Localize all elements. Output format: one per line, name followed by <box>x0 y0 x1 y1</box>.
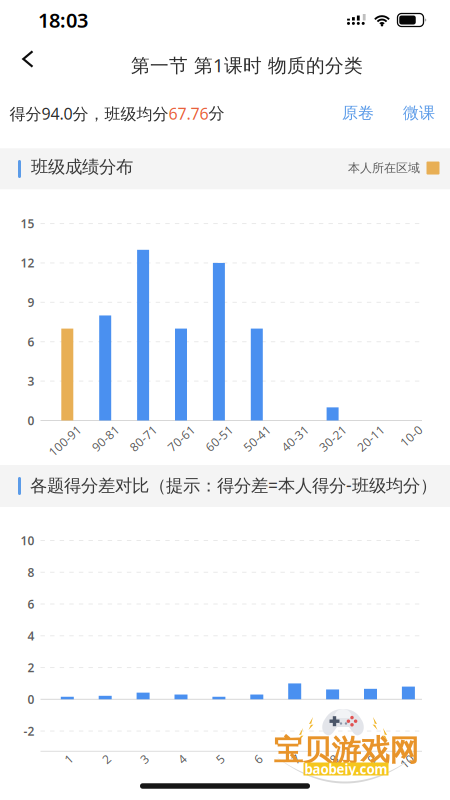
staticText: 5 <box>218 754 225 770</box>
staticText: 4 <box>27 628 34 644</box>
staticText: 0 <box>27 412 34 428</box>
staticText: 各题得分差对比（提示：得分差=本人得分-班级均分） <box>30 473 437 496</box>
staticText: 30-21 <box>319 435 351 451</box>
staticText: 4 <box>180 754 187 770</box>
staticText: 2 <box>104 754 111 770</box>
staticText: 12 <box>20 255 34 271</box>
staticText: baobeiy.com <box>304 760 387 778</box>
staticText: 50-41 <box>243 435 275 451</box>
staticText: 8 <box>332 754 339 770</box>
staticText: 原卷 <box>342 103 374 123</box>
staticText: 3 <box>142 754 149 770</box>
button[interactable]: 原卷 <box>334 96 382 130</box>
staticText: 7 <box>294 754 301 770</box>
staticText: 第一节 第1课时 物质的分类 <box>131 53 363 77</box>
staticText: 10 <box>20 532 34 548</box>
button[interactable]: Back <box>5 39 49 79</box>
staticText: 班级成绩分布 <box>31 156 133 178</box>
staticText: 6 <box>27 596 34 612</box>
staticText: 70-61 <box>167 435 199 451</box>
staticText: 微课 <box>403 103 435 123</box>
staticText: 3 <box>27 373 34 389</box>
staticText: 10 <box>400 754 414 770</box>
staticText: 6 <box>27 334 34 350</box>
staticText: 60-51 <box>205 435 237 451</box>
staticText: 6 <box>256 754 263 770</box>
staticText: 8 <box>27 564 34 580</box>
staticText: 18:03 <box>38 7 88 33</box>
staticText: 67.76 <box>168 103 208 124</box>
staticText: 15 <box>20 216 34 231</box>
staticText: 80-71 <box>129 435 161 451</box>
staticText: 100-91 <box>46 435 85 451</box>
staticText: 9 <box>27 294 34 310</box>
staticText: -2 <box>23 723 34 739</box>
staticText: 宝贝游戏网 <box>273 732 418 768</box>
staticText: 90-81 <box>91 435 123 451</box>
staticText: 2 <box>27 660 34 675</box>
staticText: 1 <box>66 754 73 770</box>
staticText: 10-0 <box>401 435 426 451</box>
staticText: 20-11 <box>356 435 388 451</box>
staticText: 得分94.0分，班级均分 <box>9 103 168 124</box>
staticText: 本人所在区域 <box>348 161 420 175</box>
button[interactable]: 微课 <box>395 96 443 130</box>
staticText: 9 <box>369 754 376 770</box>
staticText: 分 <box>208 104 224 123</box>
staticText: 0 <box>27 691 34 707</box>
staticText: 40-31 <box>281 435 313 451</box>
